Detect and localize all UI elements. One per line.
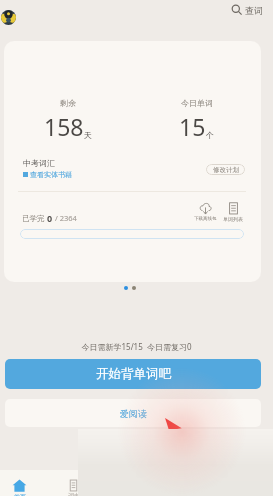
button[interactable]: 开始背单词吧 — [5, 359, 261, 389]
staticText: 查看实体书籍 — [30, 170, 72, 179]
staticText: 修改计划 — [213, 166, 239, 174]
staticText: 今日需新学15/15 今日需复习0 — [0, 341, 273, 352]
staticText: 天 — [84, 130, 92, 140]
button[interactable]: 修改计划 — [206, 164, 245, 175]
button[interactable]: 首页 — [12, 478, 27, 496]
button[interactable]: 爱阅读 — [5, 399, 261, 427]
staticText: 已学完 — [22, 213, 47, 223]
staticText: 单词列表 — [223, 216, 243, 222]
staticText: 0 — [47, 212, 53, 224]
staticText: 首页 — [14, 493, 26, 496]
staticText: 158 — [44, 111, 84, 142]
staticText: 下载离线包 — [194, 216, 217, 222]
button[interactable]: 单词列表 — [223, 202, 243, 222]
staticText: 爱阅读 — [120, 408, 147, 419]
staticText: 剩余 — [60, 98, 76, 108]
button[interactable]: 词书 — [67, 479, 80, 496]
staticText: 个 — [206, 130, 214, 140]
staticText: 查词 — [245, 5, 263, 16]
button[interactable]: Profile — [1, 10, 16, 25]
button[interactable]: 查看实体书籍 — [23, 170, 72, 179]
staticText: 词书 — [68, 492, 80, 496]
staticText: 中考词汇 — [23, 158, 55, 168]
staticText: 开始背单词吧 — [96, 366, 171, 382]
button[interactable]: 下载离线包 — [194, 202, 217, 222]
staticText: 15 — [179, 111, 206, 142]
button[interactable]: 查词 — [231, 4, 263, 16]
staticText: / 2364 — [53, 213, 77, 223]
staticText: 今日单词 — [181, 98, 213, 108]
